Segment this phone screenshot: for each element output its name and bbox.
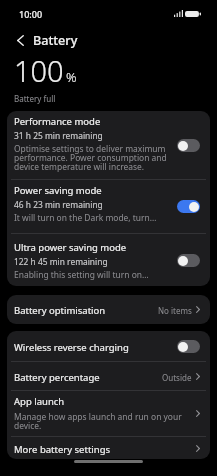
staticText: Performance mode bbox=[14, 115, 101, 128]
staticText: 122 h 45 min remaining bbox=[14, 256, 108, 267]
staticText: 46 h 23 min remaining bbox=[14, 199, 103, 210]
button[interactable]: Battery percentage bbox=[7, 362, 210, 390]
staticText: Outside bbox=[162, 372, 192, 383]
button[interactable]: Power saving mode bbox=[7, 180, 210, 233]
staticText: It will turn on the Dark mode, turn… bbox=[14, 212, 157, 224]
button[interactable]: Performance mode bbox=[7, 111, 210, 179]
staticText: Battery percentage bbox=[14, 371, 100, 384]
button[interactable]: More battery settings bbox=[7, 437, 210, 459]
staticText: Optimise settings to deliver maximum per… bbox=[14, 143, 167, 172]
staticText: App launch bbox=[14, 395, 65, 408]
button[interactable]: Back bbox=[11, 29, 30, 52]
staticText: No items bbox=[158, 305, 192, 316]
button[interactable]: Ultra power saving mode bbox=[7, 234, 210, 286]
staticText: Battery optimisation bbox=[14, 304, 106, 317]
staticText: Wireless reverse charging bbox=[14, 341, 129, 354]
staticText: Enabling this setting will turn on… bbox=[14, 269, 149, 281]
button[interactable]: Off bbox=[177, 139, 200, 152]
staticText: 31 h 25 min remaining bbox=[14, 130, 103, 141]
staticText: % bbox=[66, 68, 77, 86]
button[interactable]: Off bbox=[177, 254, 200, 267]
staticText: Battery bbox=[33, 32, 78, 49]
staticText: More battery settings bbox=[14, 443, 111, 456]
button[interactable]: Battery optimisation bbox=[7, 295, 210, 324]
button[interactable]: App launch bbox=[7, 391, 210, 436]
staticText: 100 bbox=[14, 51, 64, 90]
button[interactable]: Wireless reverse charging bbox=[7, 331, 210, 361]
button[interactable]: Off bbox=[177, 340, 200, 353]
staticText: Battery full bbox=[14, 93, 56, 104]
staticText: Power saving mode bbox=[14, 184, 102, 197]
button[interactable]: On bbox=[177, 200, 200, 213]
staticText: Ultra power saving mode bbox=[14, 241, 127, 254]
staticText: 10:00 bbox=[19, 8, 43, 20]
staticText: Manage how apps launch and run on your d… bbox=[14, 411, 182, 431]
